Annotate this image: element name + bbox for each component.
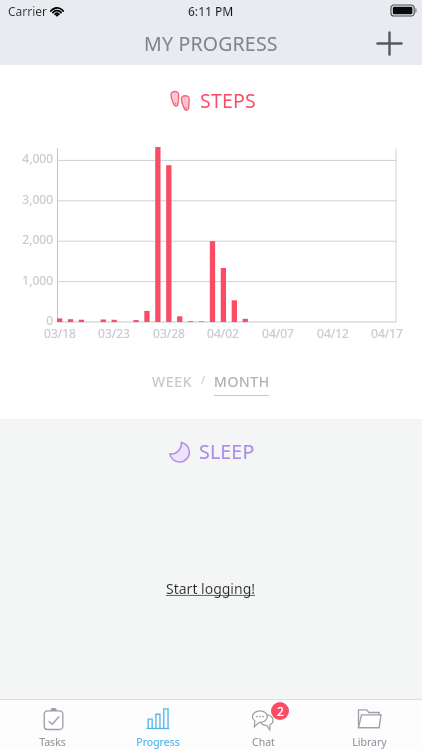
staticText: Library [352, 735, 387, 749]
staticText: 2,000 [22, 231, 53, 247]
staticText: Chat [252, 735, 275, 749]
staticText: 4,000 [22, 150, 53, 166]
staticText: 04/12 [317, 325, 349, 341]
staticText: 04/17 [371, 325, 403, 341]
staticText: Progress [136, 735, 180, 749]
button[interactable]: Library [316, 700, 422, 750]
staticText: SLEEP [199, 438, 255, 465]
staticText: Carrier [8, 3, 48, 19]
staticText: 04/02 [207, 325, 239, 341]
staticText: 03/23 [98, 325, 130, 341]
staticText: / [201, 372, 206, 387]
staticText: WEEK [152, 372, 193, 391]
staticText: 3,000 [22, 191, 53, 207]
button[interactable]: Add [367, 21, 411, 65]
staticText: 6:11 PM [188, 3, 234, 19]
staticText: Tasks [39, 735, 66, 749]
button[interactable]: Start logging! [156, 573, 266, 604]
button[interactable]: MONTH [209, 369, 275, 394]
button[interactable]: 2 [210, 700, 316, 750]
button[interactable]: WEEK [147, 369, 198, 394]
button[interactable]: Tasks [0, 700, 105, 750]
staticText: MY PROGRESS [144, 30, 278, 57]
button[interactable]: Progress [105, 700, 210, 750]
staticText: 03/18 [44, 325, 76, 341]
staticText: 0 [46, 312, 53, 328]
staticText: MONTH [214, 372, 270, 391]
staticText: 2 [277, 703, 284, 719]
staticText: 1,000 [22, 272, 53, 288]
staticText: Start logging! [166, 579, 256, 598]
staticText: STEPS [200, 87, 256, 114]
staticText: 03/28 [153, 325, 185, 341]
staticText: 04/07 [262, 325, 294, 341]
